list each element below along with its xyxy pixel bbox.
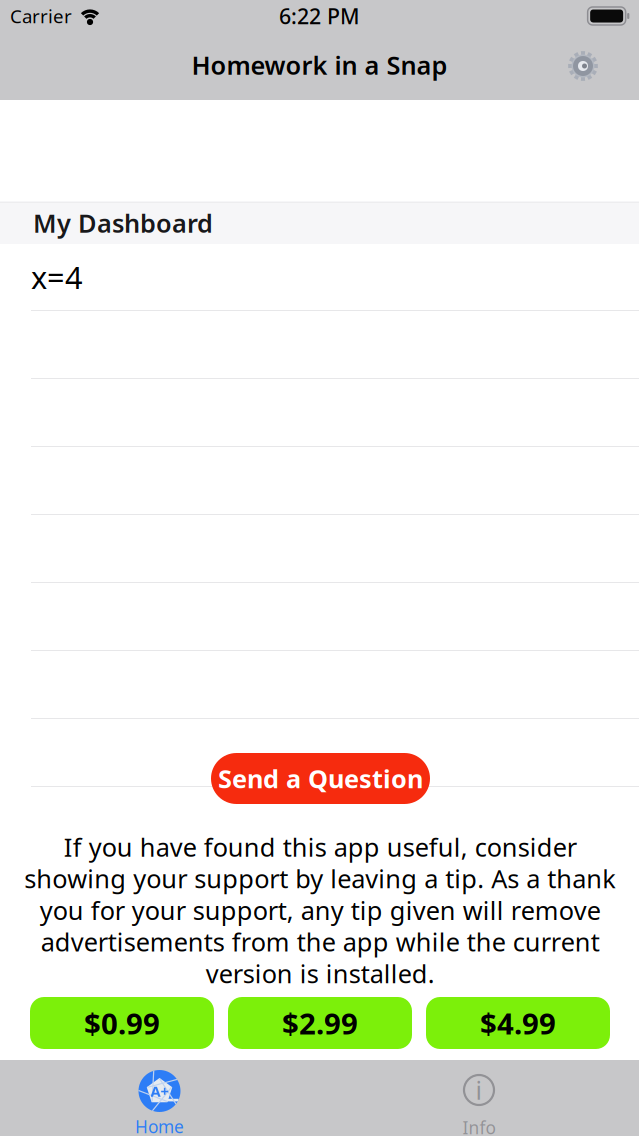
button[interactable]: $0.99: [30, 997, 214, 1049]
staticText: Home: [135, 1115, 184, 1136]
button[interactable]: $4.99: [426, 997, 610, 1049]
staticText: Send a Question: [218, 762, 423, 795]
button[interactable]: A+: [0, 1070, 319, 1136]
staticText: $4.99: [480, 1003, 556, 1042]
button[interactable]: Send a Question: [211, 753, 430, 804]
staticText: Homework in a Snap: [191, 48, 447, 82]
staticText: $2.99: [282, 1003, 358, 1042]
staticText: $0.99: [84, 1003, 160, 1042]
button[interactable]: x=4: [0, 244, 639, 310]
staticText: Carrier: [10, 4, 72, 28]
staticText: 6:22 PM: [279, 2, 360, 30]
staticText: If you have found this app useful, consi…: [24, 830, 616, 990]
staticText: My Dashboard: [33, 206, 213, 240]
button[interactable]: i: [319, 1070, 639, 1136]
staticText: Info: [462, 1116, 495, 1136]
staticText: x=4: [31, 257, 83, 297]
staticText: A+: [150, 1081, 168, 1101]
button[interactable]: $2.99: [228, 997, 412, 1049]
staticText: i: [475, 1073, 482, 1107]
button[interactable]: Settings: [559, 42, 607, 90]
